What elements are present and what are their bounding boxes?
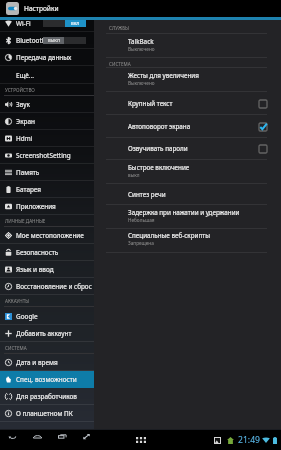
button[interactable]: Крупный текст	[94, 92, 281, 115]
button[interactable]: Для разработчиков	[0, 388, 94, 405]
button[interactable]: Fullscreen	[79, 429, 93, 443]
button[interactable]: TalkBack	[94, 34, 281, 58]
staticText: УСТРОЙСТВО	[5, 87, 35, 93]
staticText: СИСТЕМА	[109, 61, 131, 67]
staticText: Специальные веб-скрипты	[128, 231, 210, 240]
button[interactable]: Wi-Fi	[0, 17, 94, 32]
button[interactable]: Home	[30, 429, 44, 443]
staticText: СИСТЕМА	[5, 345, 27, 351]
button[interactable]: Bluetooth	[0, 32, 94, 49]
button[interactable]: Передача данных	[0, 49, 94, 66]
staticText: Быстрое включение	[128, 163, 190, 172]
button[interactable]: Звук	[0, 96, 94, 113]
staticText: АККАУНТЫ	[5, 298, 30, 304]
staticText: Звук	[16, 100, 30, 109]
staticText: Wi-Fi	[16, 19, 31, 28]
staticText: Небольшая	[128, 217, 155, 223]
staticText: Язык и ввод	[16, 265, 54, 274]
button[interactable]: Батарея	[0, 181, 94, 198]
button[interactable]: Ещё...	[0, 67, 94, 84]
button[interactable]: Задержка при нажатии и удержании	[94, 205, 281, 229]
button[interactable]: Специальные веб-скрипты	[94, 228, 281, 253]
staticText: выкл	[128, 172, 140, 178]
staticText: Мое местоположение	[16, 231, 84, 240]
staticText: 21:49	[238, 434, 260, 446]
staticText: ВКЛ	[71, 21, 80, 27]
staticText: TalkBack	[128, 37, 154, 46]
button[interactable]: Дата и время	[0, 354, 94, 371]
staticText: Задержка при нажатии и удержании	[128, 208, 240, 217]
staticText: Жесты для увеличения	[128, 71, 199, 80]
button[interactable]: Озвучивать пароли	[94, 137, 281, 160]
button[interactable]: ScreenshotSetting	[0, 147, 94, 164]
button[interactable]: Приложения	[0, 198, 94, 215]
staticText: Дата и время	[16, 358, 58, 367]
button[interactable]: Память	[0, 164, 94, 181]
staticText: Батарея	[16, 185, 41, 194]
staticText: Запрещена	[128, 240, 154, 246]
staticText: Передача данных	[16, 53, 72, 62]
button[interactable]: Google	[0, 308, 94, 325]
button[interactable]: Безопасность	[0, 244, 94, 261]
staticText: Восстановление и сброс	[16, 282, 92, 291]
staticText: Bluetooth	[16, 36, 46, 45]
button[interactable]: Автоповорот экрана	[94, 115, 281, 138]
staticText: Автоповорот экрана	[128, 122, 191, 131]
button[interactable]: Спец. возможности	[0, 371, 94, 388]
staticText: Для разработчиков	[16, 392, 77, 401]
staticText: Озвучивать пароли	[128, 144, 188, 153]
staticText: Выключено	[128, 46, 155, 52]
staticText: Синтез речи	[128, 190, 166, 199]
staticText: Приложения	[16, 202, 56, 211]
staticText: Выключено	[128, 80, 155, 86]
button[interactable]: Жесты для увеличения	[94, 68, 281, 92]
button[interactable]: Back	[5, 429, 19, 443]
staticText: Безопасность	[16, 248, 59, 257]
staticText: ЛИЧНЫЕ ДАННЫЕ	[5, 218, 46, 224]
button[interactable]: О планшетном ПК	[0, 405, 94, 422]
button[interactable]: ВКЛ	[43, 20, 86, 27]
staticText: СЛУЖБЫ	[109, 25, 129, 31]
button[interactable]: Восстановление и сброс	[0, 278, 94, 295]
staticText: Память	[16, 168, 40, 177]
staticText: О планшетном ПК	[16, 409, 73, 418]
button[interactable]: All apps	[133, 432, 148, 447]
staticText: Настройки	[24, 4, 59, 13]
button[interactable]: Мое местоположение	[0, 227, 94, 244]
staticText: Спец. возможности	[16, 375, 77, 384]
button[interactable]: Hdmi	[0, 130, 94, 147]
staticText: Экран	[16, 117, 35, 126]
staticText: ScreenshotSetting	[16, 151, 71, 160]
button[interactable]: Язык и ввод	[0, 261, 94, 278]
button[interactable]: ВЫКЛ	[43, 37, 86, 44]
button[interactable]: Экран	[0, 113, 94, 130]
staticText: Google	[16, 312, 38, 321]
button[interactable]: Recent apps	[55, 429, 69, 443]
staticText: Hdmi	[16, 134, 33, 143]
button[interactable]: Добавить аккаунт	[0, 325, 94, 342]
staticText: Ещё...	[16, 71, 34, 80]
button[interactable]: Синтез речи	[94, 183, 281, 205]
button[interactable]: Быстрое включение	[94, 160, 281, 184]
staticText: ВЫКЛ	[48, 38, 60, 44]
staticText: Добавить аккаунт	[16, 329, 72, 338]
staticText: Крупный текст	[128, 99, 173, 108]
